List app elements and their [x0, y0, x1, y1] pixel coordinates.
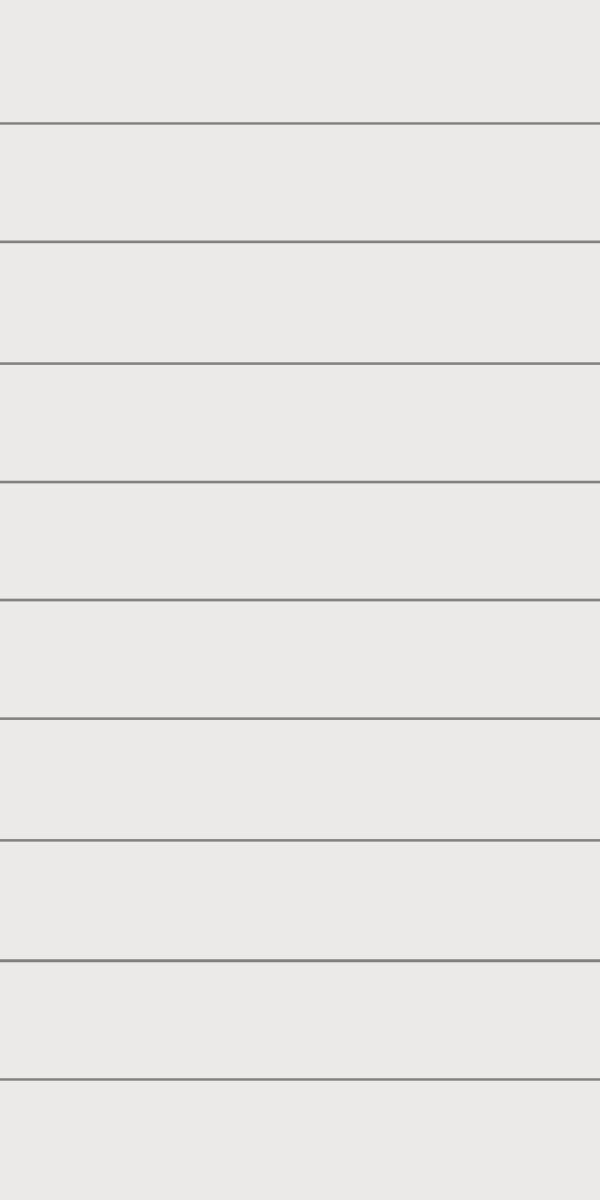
button[interactable]	[0, 844, 600, 965]
button[interactable]	[0, 722, 600, 844]
button[interactable]	[0, 244, 600, 366]
button[interactable]	[0, 965, 600, 1083]
button[interactable]	[0, 0, 600, 125]
button[interactable]	[0, 125, 600, 244]
button[interactable]	[0, 366, 600, 485]
button[interactable]	[0, 603, 600, 722]
button[interactable]	[0, 485, 600, 603]
